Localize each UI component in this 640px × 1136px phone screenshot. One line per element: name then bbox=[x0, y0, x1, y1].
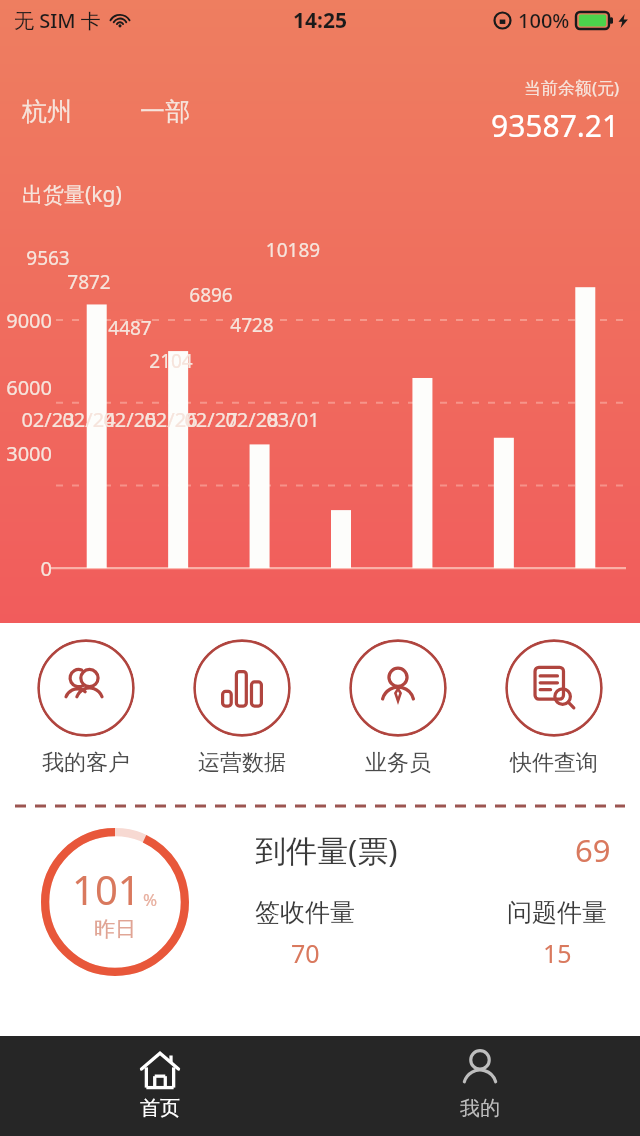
button[interactable]: 我的 bbox=[320, 1036, 640, 1136]
staticText: 一部 bbox=[140, 96, 190, 127]
staticText: 02/26 bbox=[139, 406, 203, 433]
staticText: 我的客户 bbox=[42, 749, 130, 777]
staticText: 14:25 bbox=[293, 6, 347, 35]
staticText: 02/27 bbox=[179, 406, 243, 433]
staticText: 签收件量 bbox=[255, 897, 355, 928]
staticText: 69 bbox=[575, 829, 611, 871]
staticText: 问题件量 bbox=[507, 897, 607, 928]
other: 我的 bbox=[458, 1048, 502, 1092]
staticText: 到件量(票) bbox=[255, 829, 398, 871]
staticText: 快件查询 bbox=[510, 749, 598, 777]
staticText: 业务员 bbox=[365, 749, 431, 777]
staticText: 02/28 bbox=[220, 406, 284, 433]
staticText: 93587.21 bbox=[491, 105, 620, 146]
staticText: 6000 bbox=[4, 374, 52, 401]
staticText: 03/01 bbox=[261, 406, 325, 433]
other: 首页 bbox=[138, 1048, 182, 1092]
staticText: 9563 bbox=[16, 245, 80, 271]
staticText: 出货量(kg) bbox=[22, 180, 122, 209]
staticText: 当前余额(元) bbox=[524, 76, 620, 99]
staticText: 7872 bbox=[57, 269, 121, 295]
staticText: 2104 bbox=[139, 348, 203, 374]
button[interactable]: 快件查询 bbox=[484, 623, 624, 777]
staticText: 70 bbox=[291, 936, 320, 970]
staticText: 4487 bbox=[98, 315, 162, 341]
staticText: 02/25 bbox=[98, 406, 162, 433]
staticText: 0 bbox=[4, 555, 52, 582]
button[interactable]: 业务员 bbox=[328, 623, 468, 777]
staticText: 我的 bbox=[460, 1096, 500, 1121]
staticText: 运营数据 bbox=[198, 749, 286, 777]
staticText: 15 bbox=[543, 936, 572, 970]
staticText: 昨日 bbox=[94, 916, 136, 942]
staticText: 9000 bbox=[4, 307, 52, 334]
staticText: 6896 bbox=[179, 282, 243, 308]
staticText: 无 SIM 卡 bbox=[14, 7, 101, 34]
button[interactable]: 运营数据 bbox=[172, 623, 312, 777]
staticText: % bbox=[143, 888, 158, 911]
staticText: 3000 bbox=[4, 440, 52, 467]
staticText: 100% bbox=[518, 7, 570, 34]
staticText: 10189 bbox=[261, 237, 325, 263]
staticText: 4728 bbox=[220, 312, 284, 338]
staticText: 杭州 bbox=[22, 96, 72, 127]
button[interactable]: 我的客户 bbox=[16, 623, 156, 777]
staticText: 101 bbox=[72, 862, 141, 916]
staticText: 02/23 bbox=[16, 406, 80, 433]
staticText: 02/24 bbox=[57, 406, 121, 433]
staticText: 首页 bbox=[140, 1096, 180, 1121]
button[interactable]: 首页 bbox=[0, 1036, 320, 1136]
